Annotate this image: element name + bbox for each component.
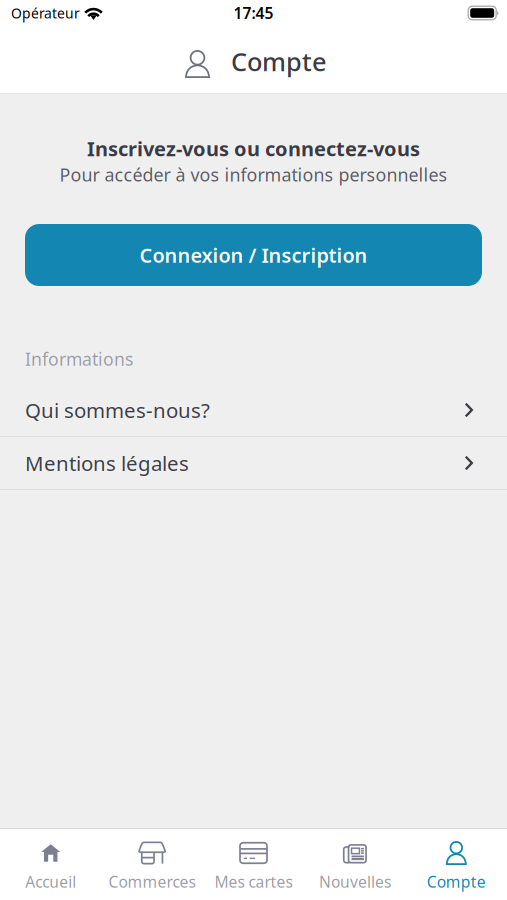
staticText: Qui sommes-nous? xyxy=(25,396,210,424)
staticText: Compte xyxy=(231,44,327,79)
staticText: Inscrivez-vous ou connectez-vous xyxy=(87,135,420,162)
staticText: Mes cartes xyxy=(214,871,292,892)
staticText: Commerces xyxy=(109,871,196,892)
button[interactable]: Commerces xyxy=(101,829,203,900)
button[interactable]: Mentions légales xyxy=(0,437,507,489)
staticText: 17:45 xyxy=(233,2,273,24)
staticText: Compte xyxy=(427,871,486,892)
staticText: Nouvelles xyxy=(319,871,391,892)
staticText: Connexion / Inscription xyxy=(139,241,367,269)
staticText: Accueil xyxy=(25,871,76,892)
staticText: Pour accéder à vos informations personne… xyxy=(59,162,447,187)
button[interactable]: Mes cartes xyxy=(203,829,304,900)
button[interactable]: Nouvelles xyxy=(304,829,406,900)
button[interactable]: Accueil xyxy=(0,829,101,900)
staticText: Mentions légales xyxy=(25,449,189,477)
button[interactable]: Qui sommes-nous? xyxy=(0,384,507,436)
staticText: Informations xyxy=(25,347,133,371)
button[interactable]: Connexion / Inscription xyxy=(25,224,482,286)
staticText: Opérateur xyxy=(11,4,80,22)
button[interactable]: Compte xyxy=(406,829,507,900)
